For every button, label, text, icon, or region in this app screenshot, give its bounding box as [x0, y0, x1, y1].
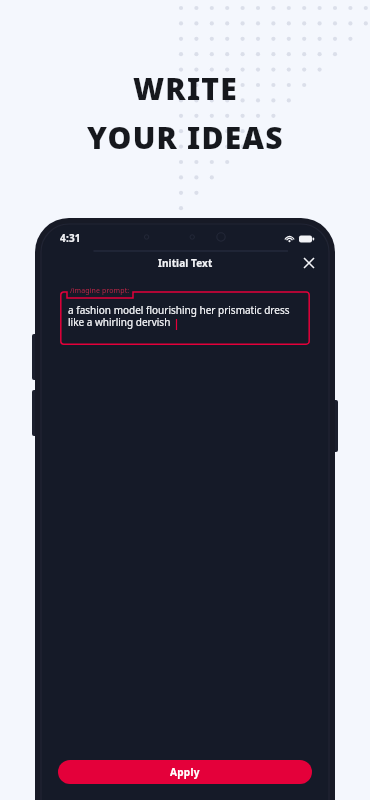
staticText: a fashion model flourishing her prismati…	[68, 303, 304, 329]
button[interactable]: Apply	[58, 760, 312, 784]
staticText: /imagine prompt:	[70, 286, 130, 296]
staticText: WRITE	[133, 68, 238, 109]
staticText: 4:31	[60, 231, 81, 245]
staticText: YOUR IDEAS	[87, 117, 284, 158]
button[interactable]: Close	[298, 252, 320, 274]
staticText: Apply	[170, 765, 200, 779]
staticText: Initial Text	[158, 256, 213, 270]
